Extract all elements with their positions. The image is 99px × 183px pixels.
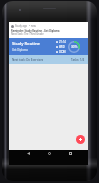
staticText: Study Routine xyxy=(12,41,41,47)
staticText: Get Diploma xyxy=(12,48,28,52)
staticText: Reminder: Study Routine - Get Diploma xyxy=(11,29,60,32)
staticText: 30% xyxy=(71,45,78,49)
staticText: • now xyxy=(29,24,36,28)
staticText: Next Task: The Third Grade xyxy=(11,32,44,36)
button[interactable]: Next task: Do Exercises xyxy=(9,55,88,64)
button[interactable]: Study app xyxy=(9,22,88,38)
staticText: Study app xyxy=(15,24,28,28)
staticText: Tasks: 1/4 xyxy=(71,58,85,62)
staticText: WED xyxy=(59,45,65,49)
button[interactable]: Home xyxy=(44,150,55,156)
staticText: 21:14 xyxy=(59,40,66,44)
staticText: Next task: Do Exercises xyxy=(12,58,44,62)
button[interactable]: Recents xyxy=(65,150,76,156)
button[interactable]: Back xyxy=(23,150,34,156)
button[interactable]: Add task xyxy=(76,135,85,144)
staticText: ICON xyxy=(59,50,66,54)
button[interactable]: Study Routine xyxy=(9,38,88,55)
